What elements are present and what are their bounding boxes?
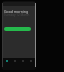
button[interactable]	[3, 58, 11, 70]
button[interactable]	[4, 27, 31, 31]
button[interactable]	[11, 58, 19, 70]
staticText: Good morning	[4, 9, 29, 14]
button[interactable]	[27, 58, 35, 70]
staticText: Tuesday 12 March	[4, 13, 30, 17]
button[interactable]	[19, 58, 27, 70]
